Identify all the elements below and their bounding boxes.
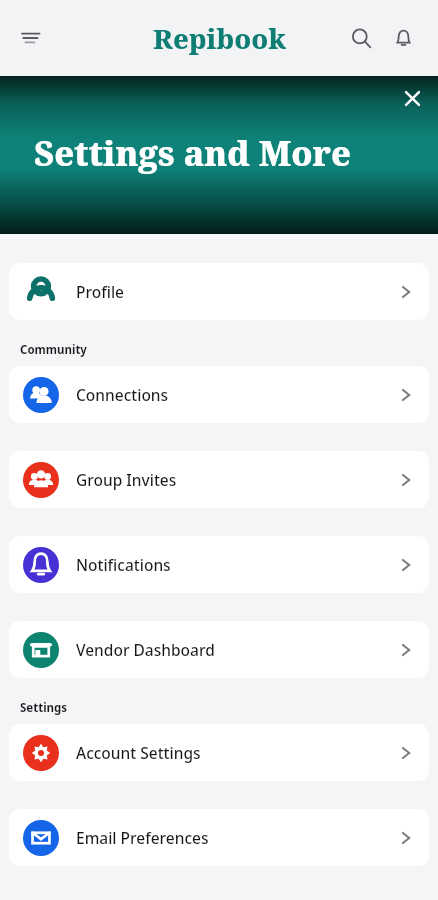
staticText: Profile — [76, 281, 397, 302]
button[interactable]: Menu — [11, 16, 55, 60]
staticText: Group Invites — [76, 469, 397, 490]
staticText: Settings — [20, 700, 68, 716]
staticText: Community — [20, 342, 87, 358]
staticText: Account Settings — [76, 742, 397, 763]
button[interactable]: Email Preferences — [9, 809, 429, 866]
button[interactable]: Group Invites — [9, 451, 429, 508]
button[interactable]: Close — [392, 78, 432, 118]
button[interactable]: Profile — [9, 263, 429, 320]
staticText: Vendor Dashboard — [76, 639, 397, 660]
staticText: Email Preferences — [76, 827, 397, 848]
button[interactable]: Connections — [9, 366, 429, 423]
button[interactable]: Vendor Dashboard — [9, 621, 429, 678]
button[interactable]: Search — [340, 17, 382, 59]
staticText: Notifications — [76, 554, 397, 575]
staticText: Repibook — [153, 20, 286, 57]
button[interactable]: Notifications — [9, 536, 429, 593]
staticText: Settings and More — [34, 130, 351, 176]
button[interactable]: Account Settings — [9, 724, 429, 781]
staticText: Connections — [76, 384, 397, 405]
button[interactable]: Notifications — [382, 17, 424, 59]
